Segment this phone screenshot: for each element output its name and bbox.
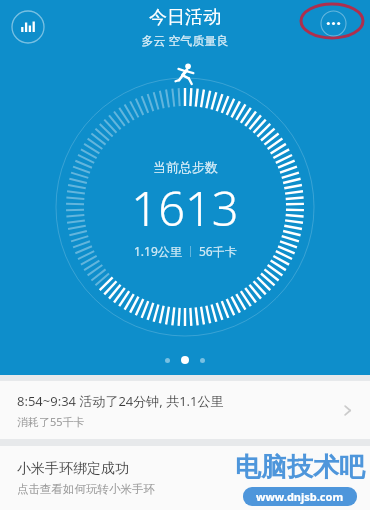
- button[interactable]: More options: [318, 8, 348, 38]
- staticText: 1.19公里: [134, 243, 182, 259]
- staticText: 消耗了55千卡: [17, 414, 85, 429]
- staticText: 今日活动: [149, 6, 221, 29]
- staticText: 点击查看如何玩转小米手环: [17, 482, 155, 496]
- staticText: 56千卡: [199, 243, 237, 259]
- staticText: www.dnjsb.com: [256, 489, 344, 504]
- staticText: 当前总步数: [153, 159, 218, 175]
- staticText: 1613: [131, 176, 239, 240]
- button[interactable]: Statistics: [9, 8, 47, 46]
- staticText: 小米手环绑定成功: [17, 460, 129, 478]
- staticText: 多云 空气质量良: [141, 32, 229, 48]
- button[interactable]: 小米手环绑定成功: [0, 446, 370, 510]
- button[interactable]: 8:54~9:34 活动了24分钟, 共1.1公里: [0, 381, 370, 439]
- staticText: 8:54~9:34 活动了24分钟, 共1.1公里: [17, 392, 224, 410]
- staticText: 电脑技术吧: [235, 451, 365, 484]
